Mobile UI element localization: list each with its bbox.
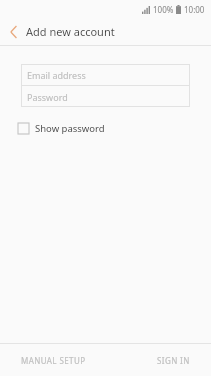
button[interactable]: Show password (15, 120, 111, 137)
button[interactable]: Password (21, 86, 190, 107)
staticText: Email address (27, 69, 86, 81)
button[interactable]: Email address (21, 64, 190, 85)
staticText: Show password (35, 122, 105, 135)
staticText: 10:00 (184, 4, 205, 15)
button[interactable]: Navigate up (0, 18, 26, 45)
button[interactable]: SIGN IN (105, 344, 211, 376)
button[interactable]: MANUAL SETUP (0, 344, 106, 376)
staticText: Password (27, 91, 68, 103)
staticText: MANUAL SETUP (21, 355, 86, 366)
staticText: SIGN IN (157, 355, 190, 366)
staticText: 100% (153, 4, 174, 15)
staticText: Add new account (26, 24, 115, 39)
